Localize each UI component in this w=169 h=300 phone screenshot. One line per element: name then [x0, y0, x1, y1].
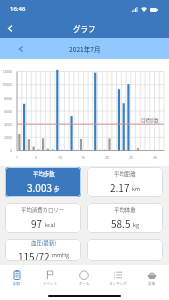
staticText: ホーム	[79, 281, 90, 286]
staticText: 2000	[0, 135, 12, 140]
staticText: 平均歩数	[33, 170, 55, 178]
button[interactable]: ホーム	[67, 270, 101, 286]
staticText: 記録	[13, 281, 21, 286]
staticText: 2.17	[110, 180, 130, 194]
button[interactable]: イベント	[33, 270, 67, 286]
button[interactable]: 食事	[135, 270, 169, 286]
staticText: 0	[0, 148, 12, 153]
staticText: 2021年7月	[69, 44, 101, 53]
staticText: 1	[12, 155, 22, 160]
staticText: 目標歩数	[141, 117, 159, 123]
staticText: 5	[31, 155, 41, 160]
button[interactable]: 記録	[0, 270, 33, 286]
staticText: 12000	[0, 69, 12, 74]
staticText: イベント	[43, 281, 58, 286]
staticText: 歩	[54, 185, 60, 193]
staticText: 平均消費カロリー	[21, 206, 65, 214]
button[interactable]: Back	[0, 18, 20, 38]
staticText: 血圧(最新)	[31, 239, 57, 247]
button[interactable]: 平均距離	[87, 167, 163, 197]
staticText: 4000	[0, 122, 12, 127]
button[interactable]: 血圧(最新)	[5, 239, 81, 261]
staticText: 食事	[148, 281, 156, 286]
staticText: 30	[150, 155, 160, 160]
staticText: 16:46	[10, 5, 26, 13]
staticText: 25	[126, 155, 136, 160]
staticText: kg	[133, 221, 139, 229]
staticText: グラフ	[73, 23, 96, 34]
staticText: 20	[102, 155, 112, 160]
staticText: 10	[55, 155, 65, 160]
button[interactable]: Previous month	[14, 42, 27, 55]
staticText: 平均体重	[114, 206, 136, 214]
button[interactable]	[87, 239, 163, 261]
staticText: ランキング	[109, 281, 127, 286]
staticText: 10000	[0, 82, 12, 87]
staticText: km	[132, 185, 140, 193]
button[interactable]: 平均体重	[87, 203, 163, 233]
button[interactable]: 平均歩数	[5, 167, 81, 197]
staticText: 平均距離	[114, 170, 136, 178]
staticText: 15	[78, 155, 88, 160]
button[interactable]: ランキング	[101, 270, 135, 286]
button[interactable]: 平均消費カロリー	[5, 203, 81, 233]
staticText: 58.5	[111, 216, 131, 230]
staticText: 6000	[0, 109, 12, 114]
staticText: kcal	[45, 221, 56, 229]
staticText: 3.003	[27, 180, 52, 194]
staticText: 97	[31, 216, 43, 230]
staticText: 115/72	[18, 249, 50, 260]
staticText: mmHg	[52, 251, 69, 259]
staticText: 8000	[0, 96, 12, 101]
